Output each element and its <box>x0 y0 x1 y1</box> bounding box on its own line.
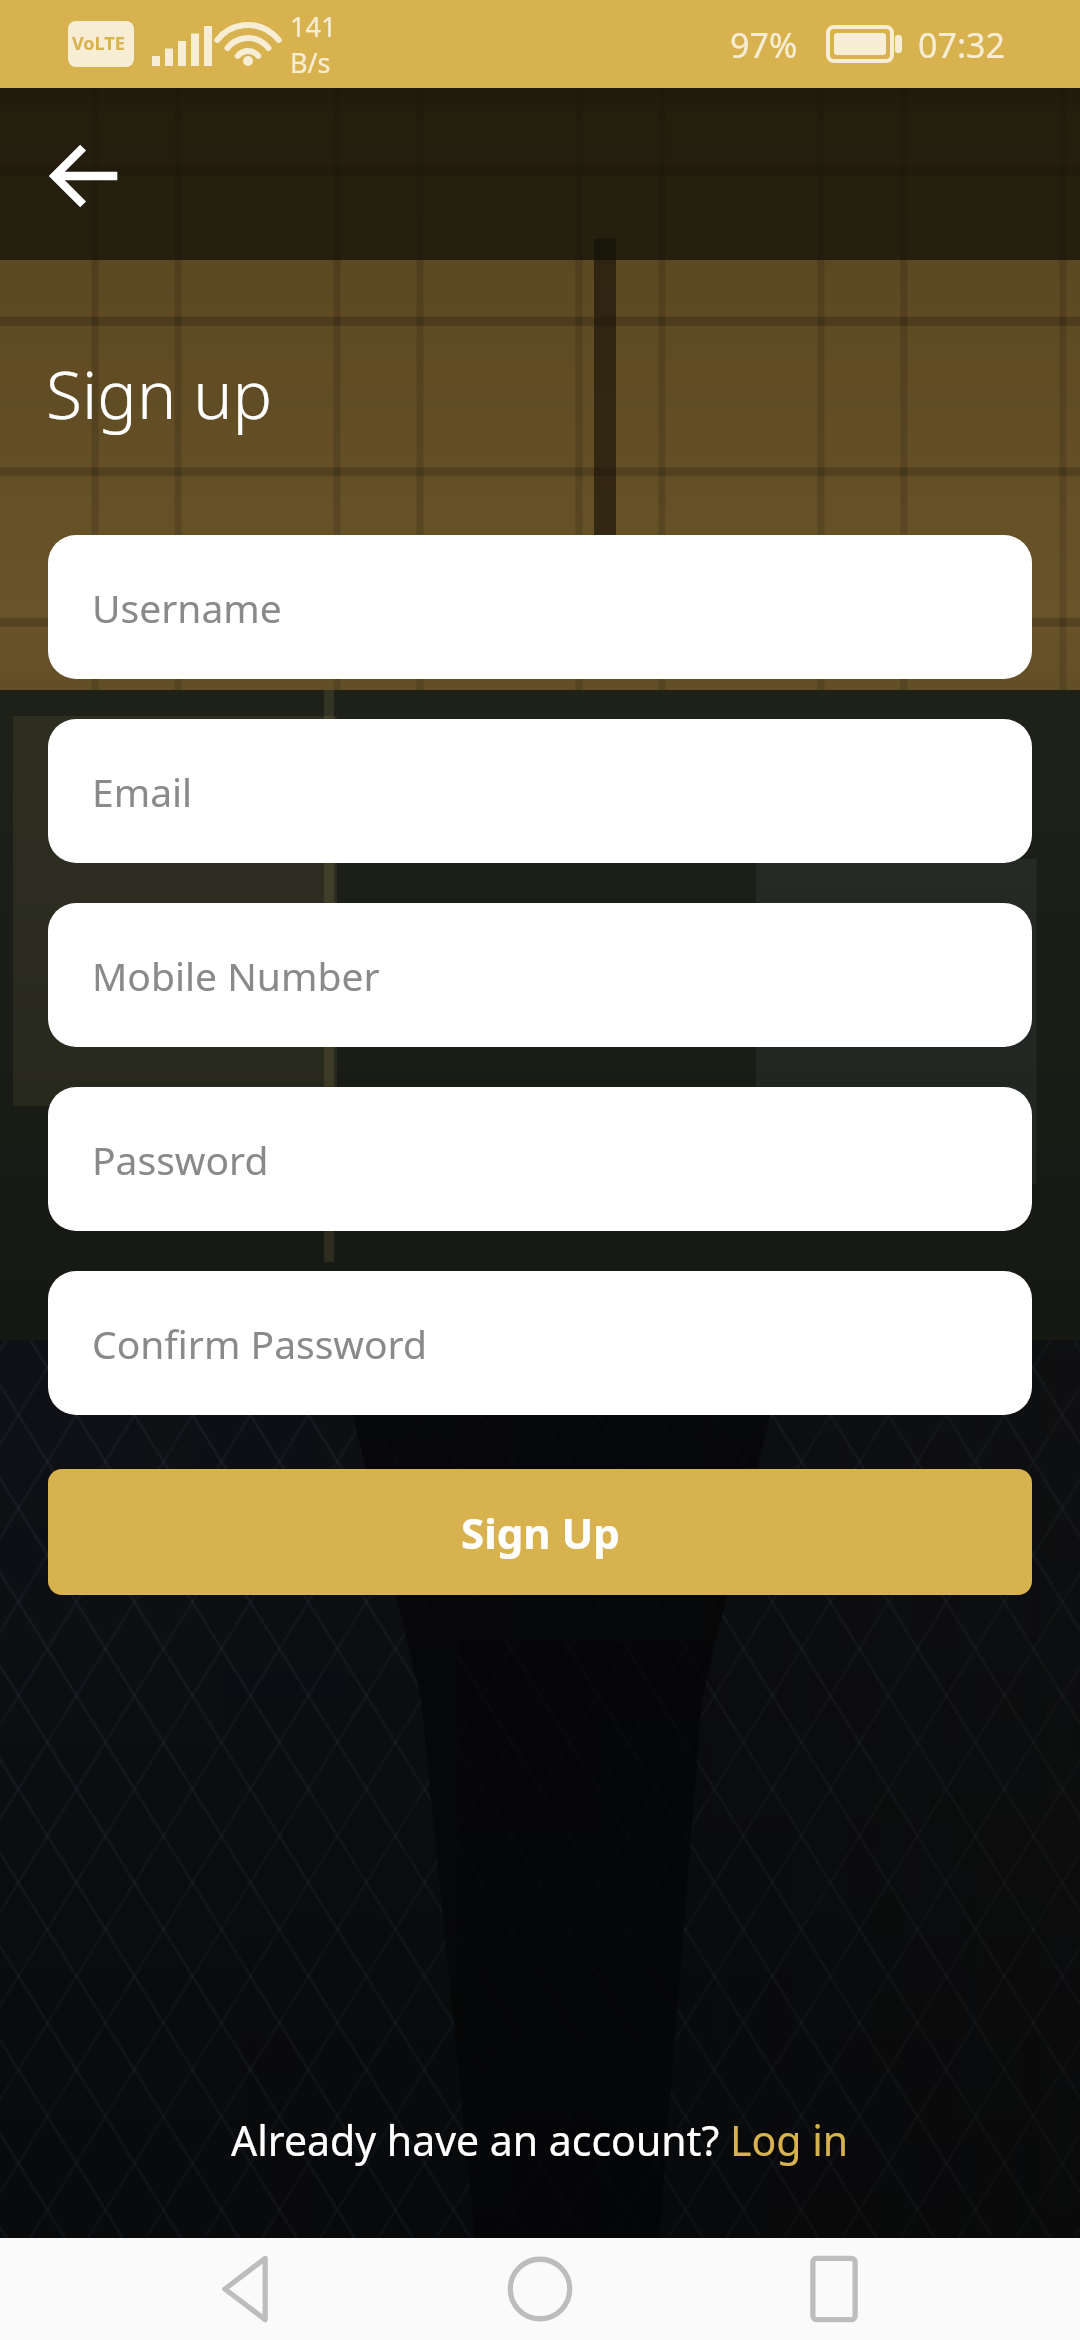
staticText: 97% <box>730 22 798 68</box>
button[interactable]: Log in <box>730 2112 849 2168</box>
button[interactable]: Email <box>48 719 1032 863</box>
staticText: Email <box>92 765 193 818</box>
staticText: Already have an account? <box>231 2112 730 2168</box>
staticText: Username <box>92 581 282 634</box>
button[interactable]: Recent apps <box>786 2241 882 2337</box>
button[interactable]: Mobile Number <box>48 903 1032 1047</box>
button[interactable]: Password <box>48 1087 1032 1231</box>
button[interactable]: Back <box>28 118 144 234</box>
button[interactable]: Username <box>48 535 1032 679</box>
staticText: Confirm Password <box>92 1317 427 1370</box>
staticText: Log in <box>730 2112 849 2168</box>
button[interactable]: Sign Up <box>48 1469 1032 1595</box>
staticText: Sign up <box>46 348 273 438</box>
staticText: B/s <box>290 44 331 81</box>
staticText: Sign Up <box>461 1504 620 1561</box>
staticText: VoLTE <box>72 31 125 56</box>
staticText: 07:32 <box>918 22 1005 68</box>
button[interactable]: Confirm Password <box>48 1271 1032 1415</box>
staticText: Password <box>92 1133 269 1186</box>
staticText: Mobile Number <box>92 949 380 1002</box>
staticText: 141 <box>290 8 337 45</box>
button[interactable]: Home <box>492 2241 588 2337</box>
button[interactable]: Back <box>198 2241 294 2337</box>
